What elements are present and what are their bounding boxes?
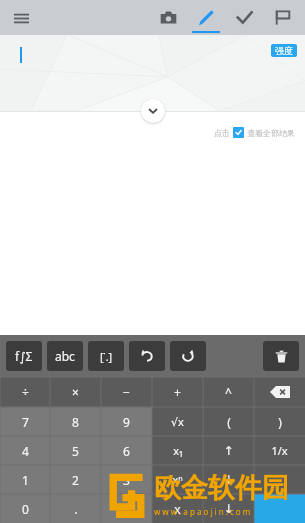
button[interactable]: 4 xyxy=(0,436,50,465)
staticText: ) xyxy=(278,414,282,430)
button[interactable]: Redo xyxy=(170,341,206,371)
button[interactable]: ) xyxy=(254,407,305,436)
staticText: − xyxy=(123,384,130,400)
button[interactable]: xⁿ xyxy=(152,465,203,494)
staticText: 2 xyxy=(72,472,79,488)
staticText: x xyxy=(174,501,181,517)
button[interactable]: ÷ xyxy=(0,377,50,407)
button[interactable]: 2 xyxy=(50,465,101,494)
button[interactable]: + xyxy=(152,377,203,407)
button[interactable]: abc xyxy=(47,341,83,371)
staticText: 5 xyxy=(72,443,79,459)
staticText: ↓ xyxy=(223,473,234,487)
button[interactable]: Expand xyxy=(141,99,165,123)
button[interactable]: 0 xyxy=(0,494,50,523)
staticText: × xyxy=(72,384,79,400)
staticText: 9 xyxy=(123,414,130,430)
button[interactable]: 7 xyxy=(0,407,50,436)
staticText: ↓ xyxy=(223,502,234,516)
staticText: abc xyxy=(55,348,75,364)
button[interactable]: 9 xyxy=(101,407,152,436)
button[interactable]: f∫Σ xyxy=(6,341,42,371)
button[interactable]: Edit xyxy=(187,0,225,35)
staticText: f∫Σ xyxy=(15,348,33,364)
button[interactable]: 1 xyxy=(0,465,50,494)
button[interactable]: 3 xyxy=(101,465,152,494)
staticText: 1 xyxy=(22,472,29,488)
button[interactable]: Backspace xyxy=(254,377,305,407)
button[interactable]: 强度 xyxy=(271,44,297,57)
staticText: 强度 xyxy=(275,45,293,56)
button[interactable]: Camera xyxy=(149,0,187,35)
button[interactable]: Equals xyxy=(254,494,305,523)
staticText: 1/x xyxy=(271,443,288,458)
staticText: w w w . a p a o j i n . c o m xyxy=(154,506,251,517)
staticText: xⁿ xyxy=(172,472,183,487)
staticText: + xyxy=(174,384,181,400)
button[interactable]: 6 xyxy=(101,436,152,465)
button[interactable]: ↓ xyxy=(203,494,254,523)
button[interactable]: × xyxy=(50,377,101,407)
staticText: ↑ xyxy=(223,444,234,458)
button[interactable]: Flag xyxy=(263,0,301,35)
staticText: 7 xyxy=(22,414,29,430)
button[interactable]: ( xyxy=(203,407,254,436)
staticText: 8 xyxy=(72,414,79,430)
button[interactable]: Fraction xyxy=(254,465,305,494)
button[interactable]: Confirm xyxy=(225,0,263,35)
staticText: ÷ xyxy=(22,384,29,400)
button[interactable]: 5 xyxy=(50,436,101,465)
staticText: √x xyxy=(171,414,184,429)
button[interactable]: x xyxy=(152,494,203,523)
staticText: 点击 xyxy=(214,128,230,138)
staticText: 3 xyxy=(123,472,130,488)
button[interactable]: Delete xyxy=(263,341,299,371)
button[interactable]: − xyxy=(101,377,152,407)
button[interactable]: ↓ xyxy=(203,465,254,494)
button[interactable]: ↑ xyxy=(203,436,254,465)
button[interactable]: 点击 xyxy=(212,127,297,138)
staticText: ( xyxy=(227,414,231,430)
button[interactable]: 1/x xyxy=(254,436,305,465)
button[interactable]: . xyxy=(50,494,101,523)
button[interactable]: Comma xyxy=(101,494,152,523)
button[interactable]: ^ xyxy=(203,377,254,407)
button[interactable]: Menu xyxy=(5,2,37,34)
staticText: ^ xyxy=(225,384,232,400)
button[interactable]: 8 xyxy=(50,407,101,436)
button[interactable]: [˙.] xyxy=(88,341,124,371)
staticText: 6 xyxy=(123,443,130,459)
staticText: 0 xyxy=(22,501,29,517)
button[interactable]: x₁ xyxy=(152,436,203,465)
staticText: 4 xyxy=(22,443,29,459)
staticText: [˙.] xyxy=(100,349,113,364)
staticText: x₁ xyxy=(173,443,183,458)
staticText: 欧金软件园 xyxy=(154,471,289,505)
staticText: 查看全部结果 xyxy=(247,128,295,138)
button[interactable]: Undo xyxy=(129,341,165,371)
staticText: . xyxy=(74,501,78,517)
button[interactable]: √x xyxy=(152,407,203,436)
